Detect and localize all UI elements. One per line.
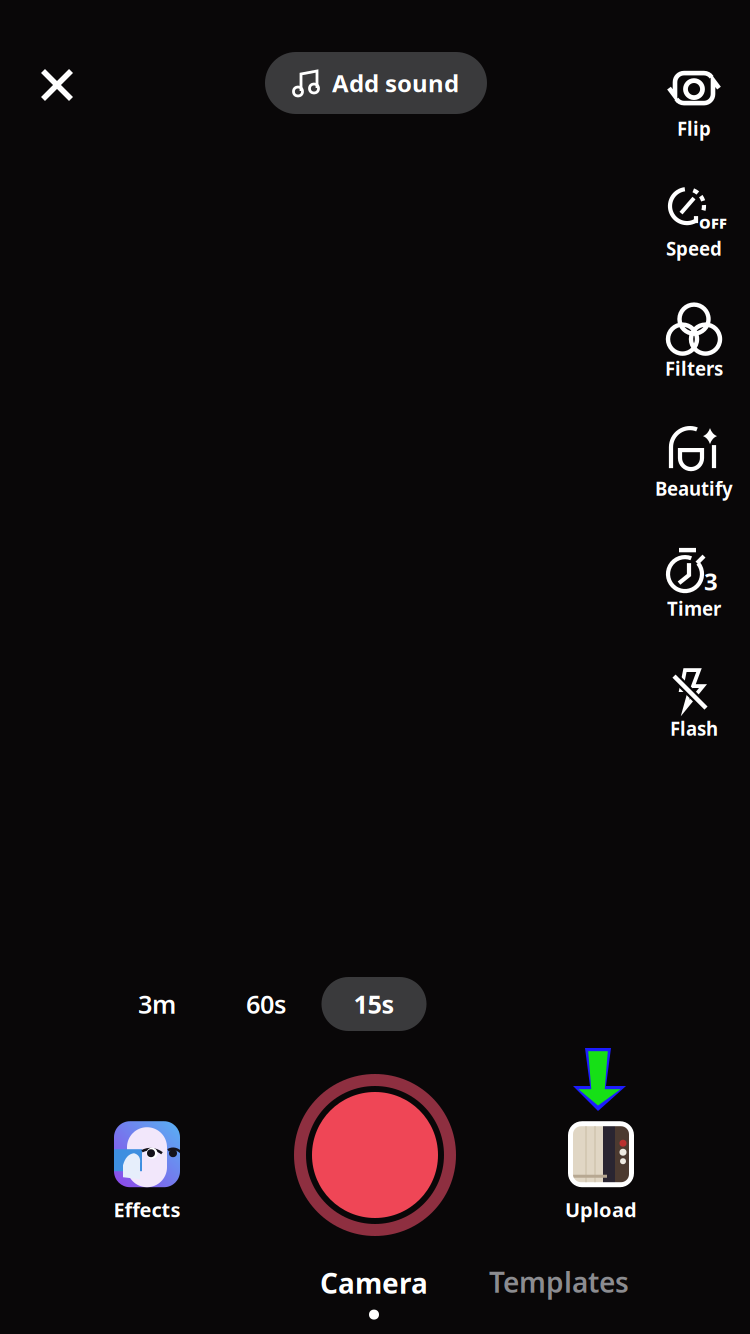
button[interactable]: Close [21, 49, 93, 121]
button[interactable]: Flip [639, 43, 749, 163]
button[interactable]: Beautify [639, 403, 749, 523]
staticText: Beautify [655, 476, 733, 501]
button[interactable]: Templates [469, 1254, 649, 1310]
staticText: Effects [113, 1196, 180, 1223]
button[interactable]: 3 [639, 523, 749, 643]
staticText: Speed [666, 236, 722, 261]
staticText: OFF [699, 213, 727, 233]
staticText: 15s [353, 987, 394, 1021]
button[interactable]: Add sound [265, 52, 487, 114]
button[interactable]: 60s [221, 977, 311, 1031]
staticText: 3m [138, 987, 176, 1021]
button[interactable]: Flash [639, 643, 749, 763]
staticText: Filters [665, 356, 723, 381]
staticText: Upload [565, 1196, 637, 1223]
button[interactable]: Filters [639, 283, 749, 403]
staticText: Add sound [332, 67, 459, 99]
button[interactable]: Effects [72, 1117, 222, 1227]
staticText: Timer [667, 596, 721, 621]
button[interactable]: Upload [526, 1117, 676, 1227]
button[interactable]: Record [287, 1067, 462, 1242]
staticText: Templates [489, 1263, 629, 1301]
staticText: Flip [677, 116, 711, 141]
button[interactable]: Camera [294, 1259, 454, 1325]
staticText: 3 [704, 565, 718, 597]
staticText: Camera [320, 1264, 428, 1302]
button[interactable]: 15s [321, 977, 426, 1031]
staticText: 60s [246, 987, 286, 1021]
staticText: Flash [670, 716, 718, 741]
button[interactable]: OFF [639, 163, 749, 283]
button[interactable]: 3m [112, 977, 202, 1031]
